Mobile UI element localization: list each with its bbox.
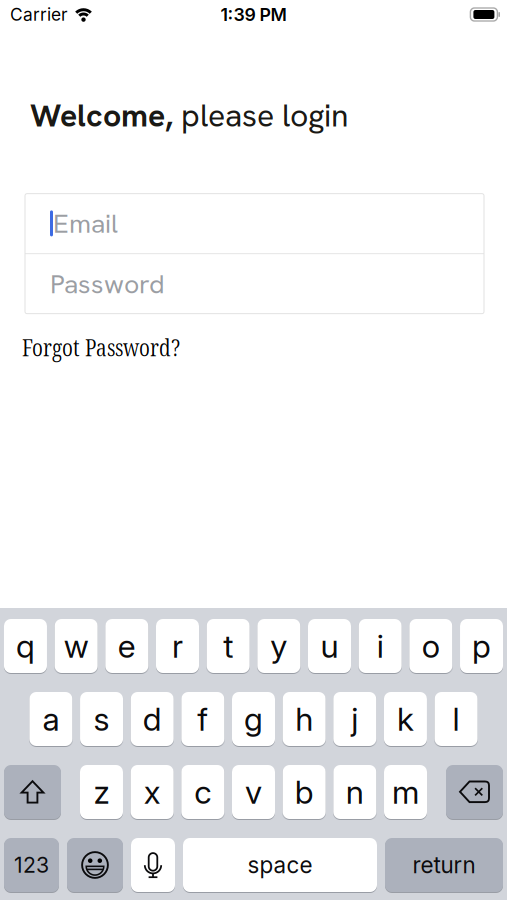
staticText: k [397, 700, 414, 738]
staticText: q [16, 627, 35, 665]
button[interactable]: x [131, 765, 174, 819]
button[interactable]: Shift [4, 765, 61, 819]
staticText: w [64, 627, 89, 665]
staticText: g [244, 700, 263, 738]
button[interactable]: q [4, 619, 47, 673]
staticText: Carrier [10, 4, 68, 25]
button[interactable]: w [55, 619, 98, 673]
staticText: y [270, 627, 287, 665]
button[interactable]: s [80, 692, 123, 746]
staticText: Email [53, 206, 118, 241]
button[interactable]: c [181, 765, 224, 819]
staticText: x [144, 773, 161, 811]
button[interactable]: l [435, 692, 478, 746]
staticText: n [346, 773, 364, 811]
button[interactable]: m [384, 765, 427, 819]
staticText: a [42, 700, 59, 738]
button[interactable]: j [333, 692, 376, 746]
button[interactable]: d [131, 692, 174, 746]
button[interactable]: Dictate [131, 838, 175, 892]
button[interactable]: h [283, 692, 326, 746]
button[interactable]: a [29, 692, 72, 746]
staticText: space [247, 851, 312, 879]
staticText: u [320, 627, 338, 665]
button[interactable]: o [409, 619, 452, 673]
staticText: 1:39 PM [220, 4, 286, 25]
button[interactable]: Emoji [67, 838, 123, 892]
staticText: o [422, 627, 440, 665]
button[interactable]: return [385, 838, 503, 892]
staticText: h [295, 700, 313, 738]
button[interactable]: t [207, 619, 250, 673]
staticText: Welcome, please login [30, 95, 349, 136]
staticText: z [93, 773, 109, 811]
button[interactable]: e [105, 619, 148, 673]
staticText: e [118, 627, 136, 665]
staticText: t [223, 627, 233, 665]
staticText: Password [50, 266, 165, 301]
staticText: f [197, 700, 208, 738]
button[interactable]: f [181, 692, 224, 746]
button[interactable]: p [460, 619, 503, 673]
button[interactable]: u [308, 619, 351, 673]
button[interactable]: Email [25, 194, 484, 253]
button[interactable]: Forgot Password? [22, 332, 180, 363]
staticText: v [245, 773, 262, 811]
button[interactable]: Delete [446, 765, 503, 819]
button[interactable]: space [183, 838, 377, 892]
button[interactable]: z [80, 765, 123, 819]
staticText: l [453, 700, 460, 738]
staticText: s [94, 700, 110, 738]
button[interactable]: y [257, 619, 300, 673]
button[interactable]: k [384, 692, 427, 746]
staticText: r [172, 627, 183, 665]
staticText: c [194, 773, 211, 811]
button[interactable]: Password [25, 254, 484, 314]
button[interactable]: i [359, 619, 402, 673]
staticText: j [351, 700, 358, 738]
staticText: return [412, 851, 475, 879]
staticText: Forgot Password? [22, 332, 180, 363]
staticText: p [472, 627, 491, 665]
staticText: 123 [14, 852, 49, 878]
staticText: d [143, 700, 162, 738]
staticText: i [377, 627, 384, 665]
button[interactable]: r [156, 619, 199, 673]
button[interactable]: b [283, 765, 326, 819]
staticText: b [295, 773, 314, 811]
button[interactable]: g [232, 692, 275, 746]
staticText: m [392, 773, 419, 811]
button[interactable]: v [232, 765, 275, 819]
button[interactable]: n [333, 765, 376, 819]
button[interactable]: Numbers [4, 838, 59, 892]
